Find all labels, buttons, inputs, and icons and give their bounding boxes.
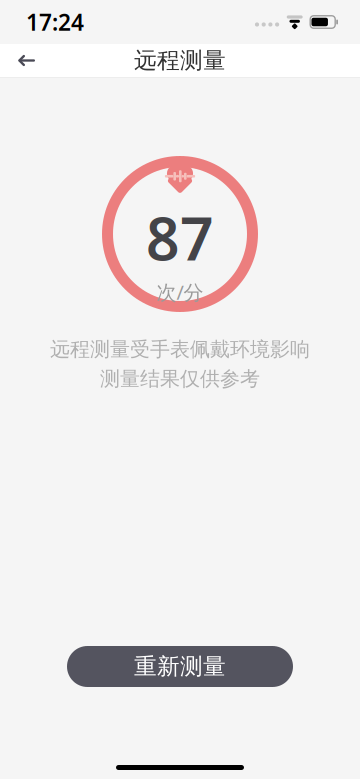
staticText: 重新测量 bbox=[134, 653, 226, 680]
staticText: 87 bbox=[146, 199, 214, 277]
button[interactable]: 重新测量 bbox=[67, 646, 293, 687]
staticText: 远程测量 bbox=[134, 47, 226, 74]
staticText: 测量结果仅供参考 bbox=[100, 367, 260, 391]
button[interactable]: 返回 bbox=[4, 38, 48, 82]
staticText: 次/分 bbox=[156, 279, 203, 305]
staticText: 远程测量受手表佩戴环境影响 bbox=[50, 337, 310, 362]
staticText: 17:24 bbox=[26, 7, 84, 37]
